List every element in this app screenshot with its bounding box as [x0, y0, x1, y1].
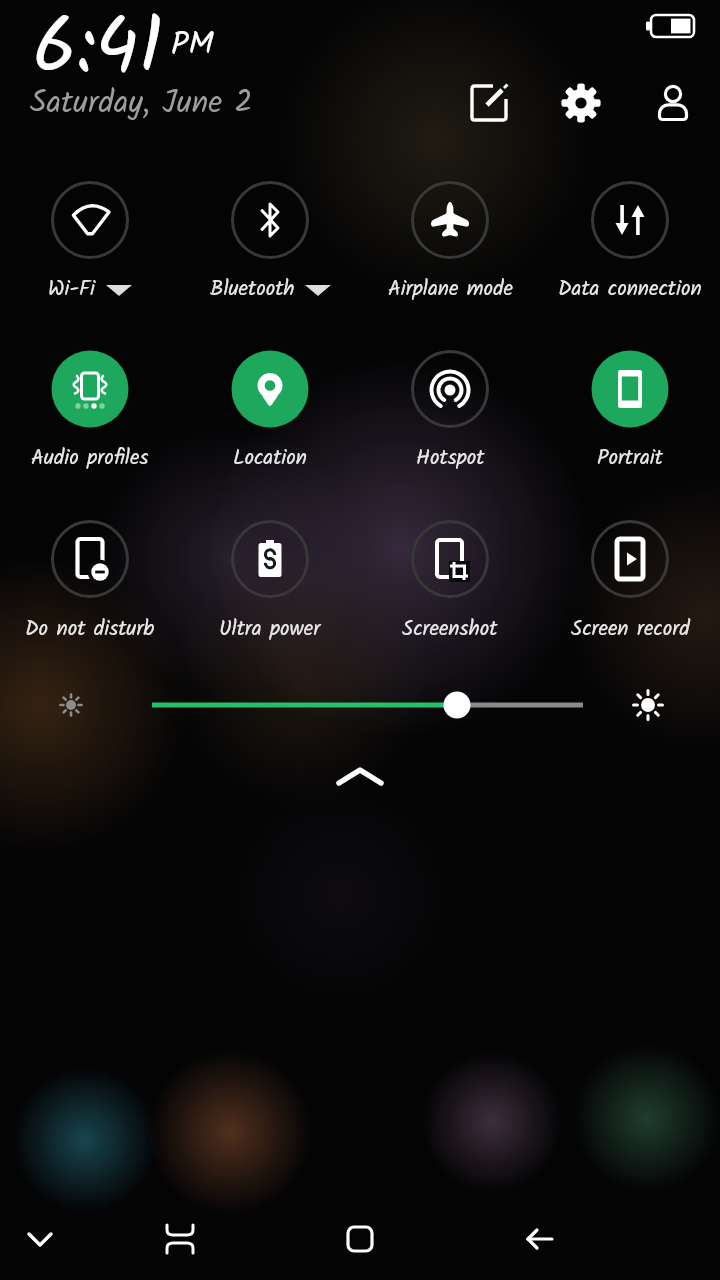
- button[interactable]: [325, 752, 395, 802]
- button[interactable]: [45, 344, 135, 434]
- staticText: Hotspot: [416, 442, 485, 475]
- staticText: Ultra power: [219, 613, 321, 646]
- button[interactable]: [585, 175, 675, 265]
- staticText: Saturday, June 2: [30, 79, 253, 128]
- button[interactable]: [405, 514, 495, 604]
- button[interactable]: [45, 175, 135, 265]
- button[interactable]: [225, 514, 315, 604]
- button[interactable]: [225, 344, 315, 434]
- button[interactable]: [405, 175, 495, 265]
- button[interactable]: [225, 175, 315, 265]
- staticText: Location: [233, 442, 308, 475]
- button[interactable]: [8, 1207, 72, 1271]
- staticText: Portrait: [597, 442, 663, 475]
- button[interactable]: [459, 73, 519, 133]
- button[interactable]: [45, 514, 135, 604]
- staticText: Audio profiles: [31, 442, 149, 475]
- button[interactable]: [148, 1207, 212, 1271]
- button[interactable]: [643, 73, 703, 133]
- staticText: Bluetooth: [210, 273, 295, 306]
- staticText: Screenshot: [402, 613, 498, 646]
- staticText: Airplane mode: [388, 273, 513, 306]
- button[interactable]: [405, 344, 495, 434]
- button[interactable]: [585, 514, 675, 604]
- staticText: Wi-Fi: [48, 273, 96, 306]
- button[interactable]: [585, 344, 675, 434]
- staticText: PM: [171, 20, 214, 71]
- button[interactable]: [328, 1207, 392, 1271]
- staticText: 6:41: [33, 0, 164, 112]
- staticText: Data connection: [558, 273, 702, 306]
- button[interactable]: [508, 1207, 572, 1271]
- staticText: Do not disturb: [25, 613, 155, 646]
- staticText: Screen record: [571, 613, 690, 646]
- button[interactable]: [551, 73, 611, 133]
